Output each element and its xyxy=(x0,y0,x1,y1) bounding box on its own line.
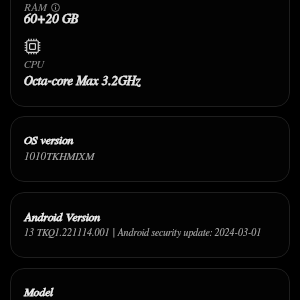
staticText: 13 TKQ1.221114.001 | Android security up… xyxy=(24,228,262,238)
staticText: Android Version xyxy=(24,211,101,223)
staticText: 60+20 GB xyxy=(24,13,79,26)
button[interactable]: Android Version xyxy=(10,192,290,258)
staticText: Model xyxy=(24,286,54,298)
button[interactable]: Model xyxy=(10,268,290,300)
staticText: RAM xyxy=(24,2,47,13)
button[interactable]: RAM xyxy=(10,0,290,107)
staticText: CPU xyxy=(24,59,44,70)
other: RAM info xyxy=(51,3,60,12)
button[interactable]: OS version xyxy=(10,116,290,182)
staticText: 1010TKHMIXM xyxy=(24,151,95,162)
staticText: OS version xyxy=(24,134,74,146)
staticText: Octa-core Max 3.2GHz xyxy=(24,75,141,88)
